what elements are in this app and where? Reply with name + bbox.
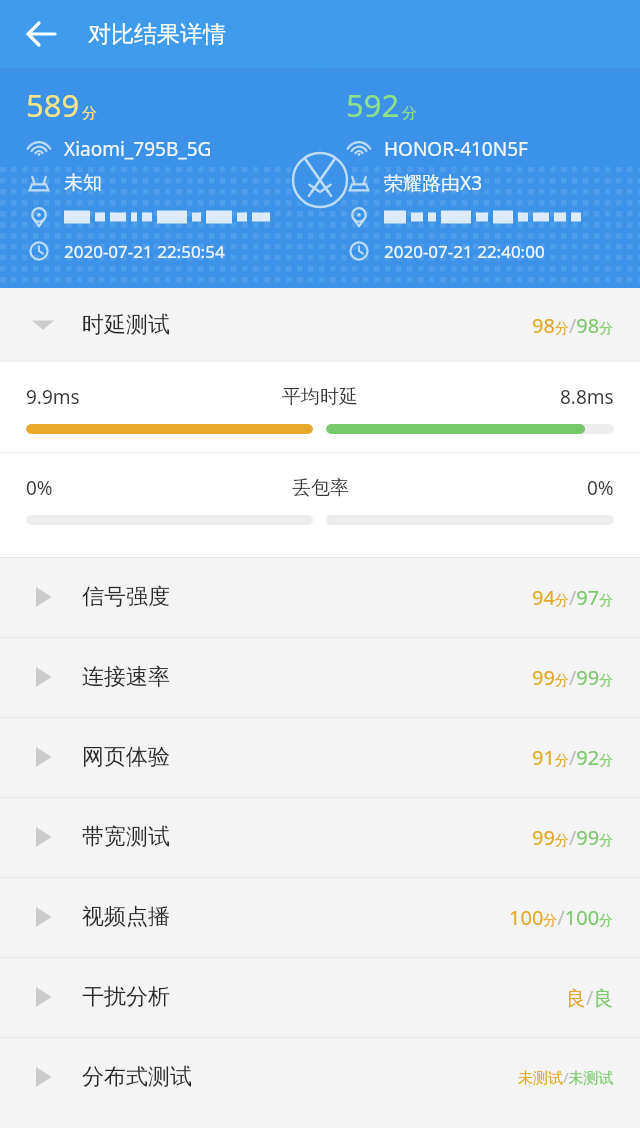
staticText: 带宽测试 xyxy=(82,823,170,851)
staticText: 视频点播 xyxy=(82,903,170,931)
button[interactable]: 网页体验 xyxy=(0,717,640,797)
staticText: 未知 xyxy=(64,171,102,195)
staticText: 干扰分析 xyxy=(82,983,170,1011)
staticText: HONOR-410N5F xyxy=(384,136,528,162)
button[interactable]: 信号强度 xyxy=(0,557,640,637)
staticText: 9.9ms xyxy=(26,384,80,410)
staticText: 平均时延 xyxy=(282,385,358,409)
staticText: 8.8ms xyxy=(560,384,614,410)
staticText: 2020-07-21 22:40:00 xyxy=(384,240,545,263)
staticText: 分布式测试 xyxy=(82,1063,192,1091)
staticText: 荣耀路由X3 xyxy=(384,170,483,196)
button[interactable]: 分布式测试 xyxy=(0,1037,640,1117)
staticText: 100分/100分 xyxy=(509,904,614,931)
button[interactable]: 连接速率 xyxy=(0,637,640,717)
staticText: 信号强度 xyxy=(82,583,170,611)
button[interactable]: 干扰分析 xyxy=(0,957,640,1037)
staticText: 时延测试 xyxy=(82,311,170,339)
button[interactable]: 时延测试 xyxy=(0,288,640,362)
staticText: 91分/92分 xyxy=(532,744,614,771)
staticText: 0% xyxy=(26,475,53,501)
staticText: 丢包率 xyxy=(292,476,349,500)
staticText: Xiaomi_795B_5G xyxy=(64,136,212,162)
staticText: 592 xyxy=(346,84,400,126)
staticText: 589 xyxy=(26,84,80,126)
button[interactable]: 视频点播 xyxy=(0,877,640,957)
staticText: 分 xyxy=(82,104,97,123)
staticText: 连接速率 xyxy=(82,663,170,691)
staticText: 2020-07-21 22:50:54 xyxy=(64,240,225,263)
staticText: 0% xyxy=(587,475,614,501)
staticText: 良/良 xyxy=(566,984,614,1011)
button[interactable]: Back xyxy=(14,6,70,62)
staticText: 99分/99分 xyxy=(532,824,614,851)
staticText: 网页体验 xyxy=(82,743,170,771)
staticText: 对比结果详情 xyxy=(88,20,226,49)
staticText: 未测试/未测试 xyxy=(518,1067,614,1087)
staticText: 99分/99分 xyxy=(532,664,614,691)
button[interactable]: 带宽测试 xyxy=(0,797,640,877)
staticText: 94分/97分 xyxy=(532,584,614,611)
staticText: 98分/98分 xyxy=(532,312,614,339)
staticText: 分 xyxy=(402,104,417,123)
